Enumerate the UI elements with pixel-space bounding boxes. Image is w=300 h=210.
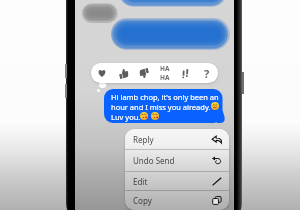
staticText: HA: [160, 64, 170, 73]
other: Copy: [212, 196, 222, 205]
button[interactable]: Copy: [125, 191, 229, 210]
button[interactable]: Question reaction: [198, 63, 215, 83]
staticText: Reply: [133, 134, 154, 145]
other: Edit: [212, 177, 222, 186]
button[interactable]: Love reaction: [93, 63, 110, 83]
button[interactable]: Thumbs up: [115, 63, 132, 83]
button[interactable]: Edit: [125, 172, 229, 190]
staticText: Copy: [133, 195, 152, 206]
button[interactable]: Undo Send: [125, 150, 229, 171]
staticText: Undo Send: [133, 155, 175, 166]
button[interactable]: Haha reaction: [156, 63, 173, 83]
other: Reply: [212, 135, 222, 144]
staticText: Edit: [133, 176, 148, 187]
staticText: ?: [204, 66, 210, 81]
button[interactable]: Exclamation reaction: [177, 63, 194, 83]
button[interactable]: Thumbs down: [136, 63, 153, 83]
other: Undo Send: [212, 156, 222, 165]
button[interactable]: Reply: [125, 129, 229, 149]
staticText: HA: [160, 73, 170, 82]
staticText: Hi lamb chop, it's only been an hour and…: [111, 92, 219, 122]
